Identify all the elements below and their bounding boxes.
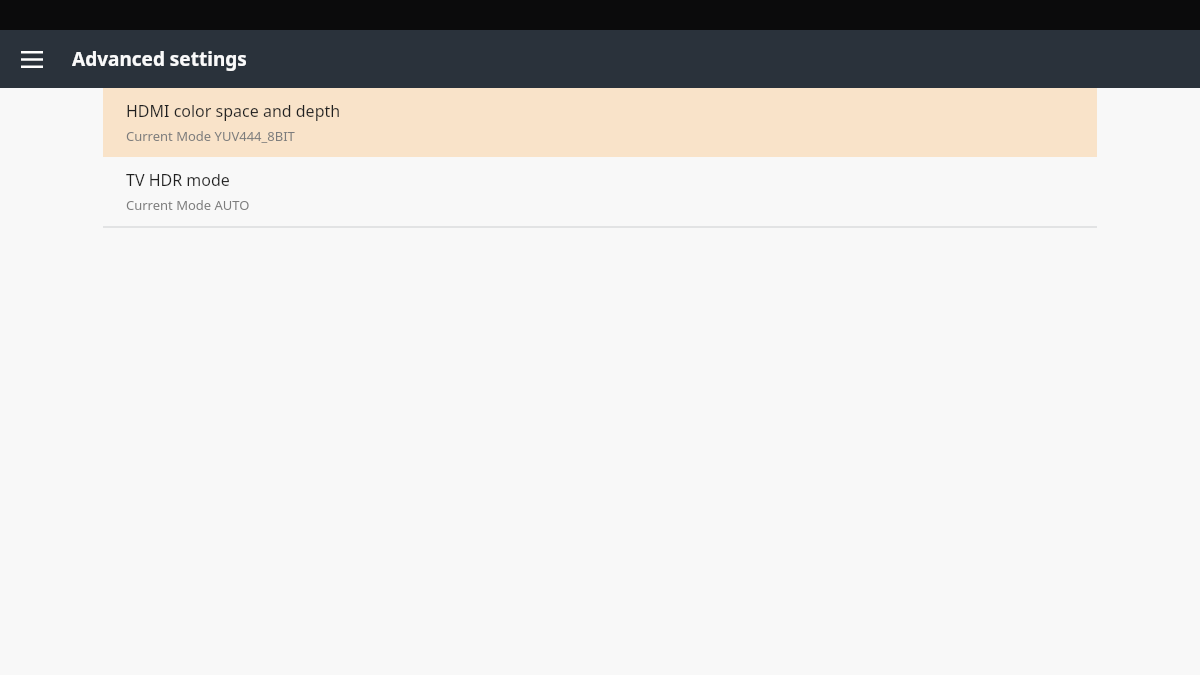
staticText: HDMI color space and depth [126,100,341,122]
staticText: Current Mode AUTO [126,196,250,214]
button[interactable]: HDMI color space and depth [103,88,1097,157]
staticText: Advanced settings [72,46,247,72]
button[interactable]: TV HDR mode [103,157,1097,226]
staticText: TV HDR mode [126,169,230,191]
button[interactable]: Open navigation menu [9,36,55,82]
staticText: Current Mode YUV444_8BIT [126,127,295,145]
